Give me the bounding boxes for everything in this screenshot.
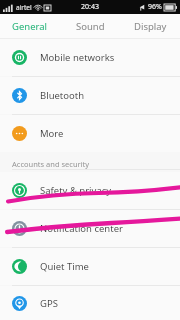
staticText: airtel [16, 3, 32, 12]
button[interactable]: Mobile networks [0, 39, 180, 76]
staticText: Quiet Time [40, 260, 89, 273]
button[interactable]: Sound [60, 14, 120, 38]
button[interactable]: Display [120, 14, 180, 38]
staticText: Safety & privacy [40, 184, 112, 197]
staticText: GPS [40, 297, 58, 310]
button[interactable]: General [0, 14, 60, 38]
staticText: Sound [76, 20, 105, 33]
button[interactable]: Bluetooth [0, 77, 180, 114]
staticText: Mobile networks [40, 51, 115, 64]
staticText: Display [134, 20, 167, 33]
button[interactable]: More [0, 115, 180, 152]
staticText: Accounts and security [12, 159, 90, 169]
staticText: 96% [148, 2, 162, 12]
button[interactable]: Notification center [0, 210, 180, 247]
staticText: General [12, 20, 48, 33]
button[interactable]: GPS [0, 286, 180, 320]
staticText: Notification center [40, 222, 123, 235]
button[interactable]: Safety & privacy [0, 172, 180, 209]
staticText: Bluetooth [40, 89, 85, 102]
staticText: 20:43 [81, 2, 99, 12]
button[interactable]: Quiet Time [0, 248, 180, 285]
staticText: More [40, 127, 64, 140]
